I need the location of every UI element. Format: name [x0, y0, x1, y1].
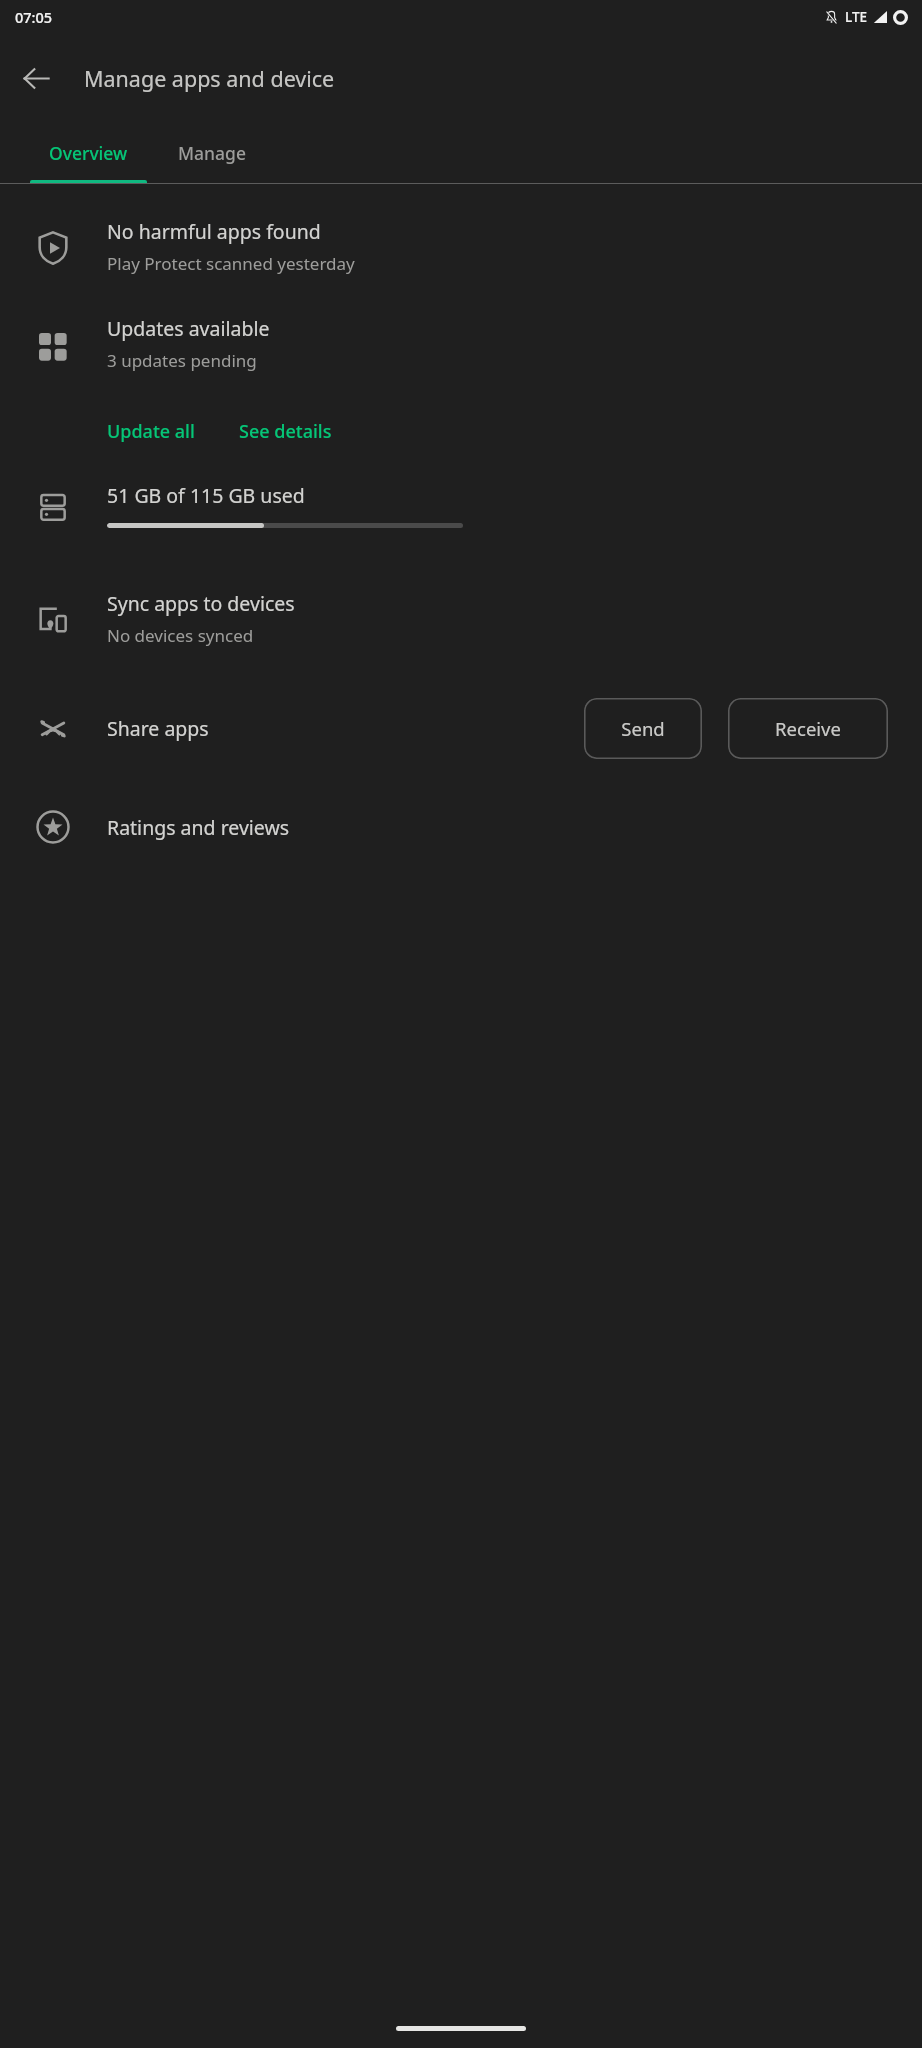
button[interactable]: Send: [584, 698, 702, 759]
staticText: Ratings and reviews: [107, 814, 290, 841]
button[interactable]: No harmful apps found: [0, 210, 922, 307]
button[interactable]: Overview: [30, 122, 147, 184]
staticText: Play Protect scanned yesterday: [107, 252, 355, 275]
staticText: Updates available: [107, 315, 270, 342]
button[interactable]: Update all: [97, 413, 205, 450]
staticText: Send: [621, 716, 665, 741]
staticText: Manage apps and device: [84, 64, 335, 93]
button[interactable]: Ratings and reviews: [0, 778, 922, 876]
staticText: No devices synced: [107, 624, 254, 647]
staticText: Update all: [107, 419, 195, 444]
staticText: See details: [239, 419, 332, 444]
staticText: Receive: [775, 716, 841, 741]
staticText: Manage: [178, 141, 246, 165]
staticText: 51 GB of 115 GB used: [107, 482, 305, 509]
staticText: 3 updates pending: [107, 349, 257, 372]
button[interactable]: Back: [8, 50, 64, 106]
staticText: Share apps: [107, 715, 209, 742]
button[interactable]: Receive: [728, 698, 888, 759]
staticText: 07:05: [15, 7, 53, 27]
button[interactable]: See details: [229, 413, 342, 450]
staticText: Overview: [49, 141, 128, 165]
button[interactable]: Manage: [147, 122, 277, 184]
button[interactable]: 51 GB of 115 GB used: [0, 450, 922, 582]
staticText: Sync apps to devices: [107, 590, 295, 617]
button[interactable]: Sync apps to devices: [0, 582, 922, 678]
staticText: LTE: [845, 8, 868, 26]
staticText: No harmful apps found: [107, 218, 321, 245]
button[interactable]: Updates available: [0, 307, 922, 399]
